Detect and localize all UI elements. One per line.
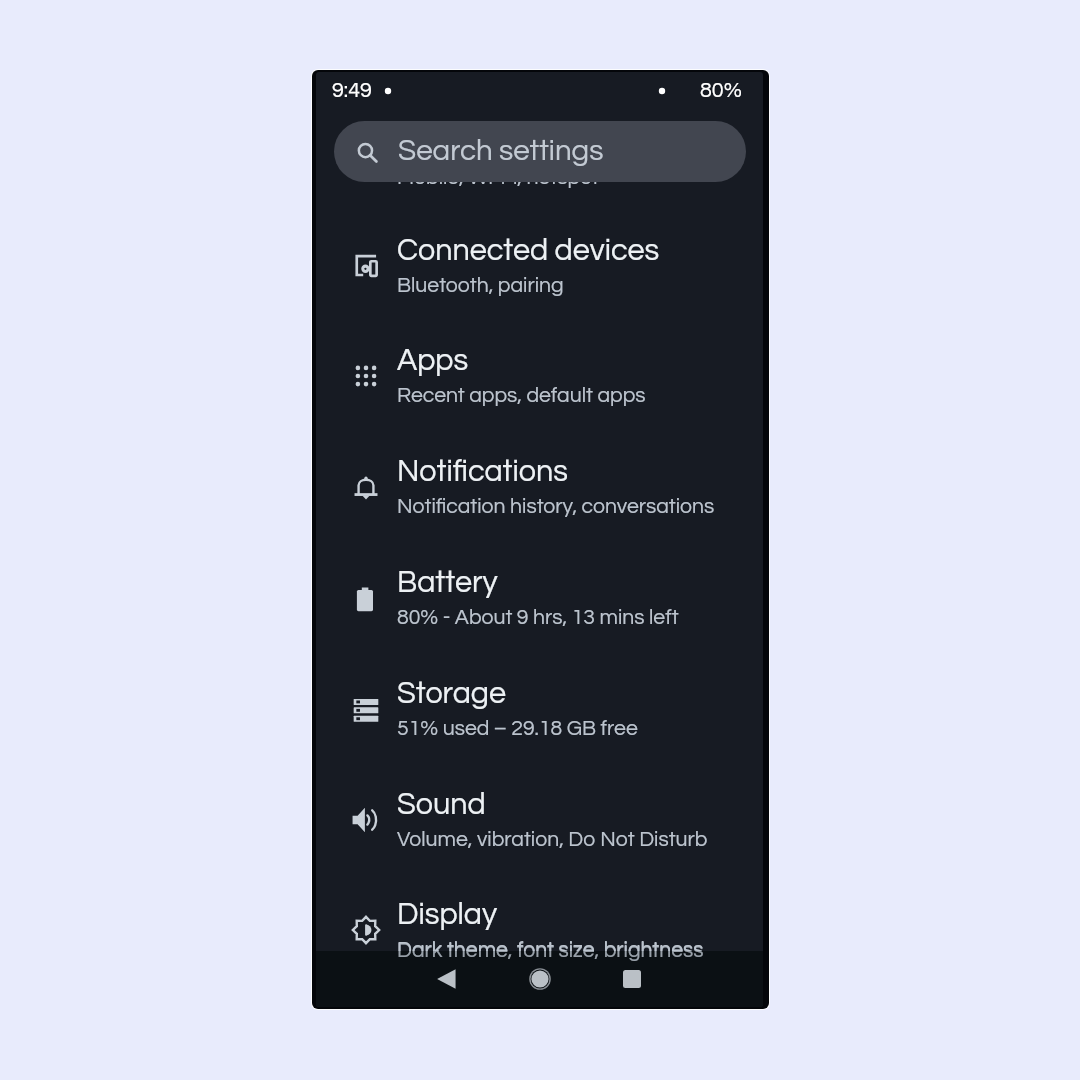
staticText: Apps — [397, 345, 469, 376]
staticText: Notification history, conversations — [397, 496, 715, 518]
staticText: Battery — [397, 567, 498, 598]
button[interactable]: Storage — [316, 656, 763, 760]
staticText: 51% used – 29.18 GB free — [397, 718, 638, 740]
staticText: Search settings — [398, 136, 604, 166]
staticText: 80% — [700, 79, 742, 101]
staticText: 80% - About 9 hrs, 13 mins left — [397, 607, 679, 629]
button[interactable]: Recent apps — [610, 957, 654, 1001]
button[interactable]: Apps — [316, 323, 763, 427]
staticText: Dark theme, font size, brightness — [397, 940, 704, 962]
staticText: Volume, vibration, Do Not Disturb — [397, 829, 708, 851]
staticText: Dark theme, font size, brightness — [397, 939, 704, 961]
staticText: Display — [397, 899, 498, 930]
staticText: 9:49 — [332, 79, 372, 101]
staticText: Bluetooth, pairing — [397, 275, 564, 297]
staticText: Connected devices — [397, 235, 660, 266]
staticText: Sound — [397, 789, 486, 820]
button[interactable]: Search settings — [334, 121, 746, 182]
button[interactable]: Back — [425, 957, 469, 1001]
button[interactable]: Home — [518, 957, 562, 1001]
button[interactable]: Display — [316, 877, 763, 981]
button[interactable]: Battery — [316, 545, 763, 649]
button[interactable]: Sound — [316, 767, 763, 871]
staticText: Storage — [397, 678, 507, 709]
staticText: Mobile, Wi-Fi, hotspot — [397, 167, 599, 189]
staticText: Notifications — [397, 456, 568, 487]
button[interactable]: Notifications — [316, 434, 763, 538]
staticText: Recent apps, default apps — [397, 385, 646, 407]
button[interactable]: Connected devices — [316, 213, 763, 317]
